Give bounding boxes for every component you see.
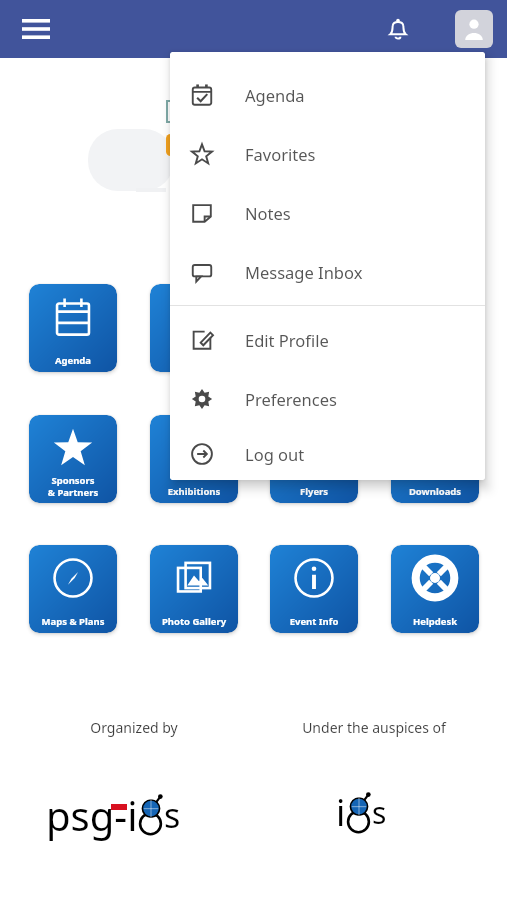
staticText: Sponsors & Partners [31, 474, 115, 498]
button[interactable]: Agenda [29, 284, 117, 372]
button[interactable]: Open navigation menu [16, 9, 56, 49]
button[interactable]: Photo Gallery [150, 545, 238, 633]
staticText: Event Info [272, 615, 356, 628]
staticText: Under the auspices of [240, 718, 507, 737]
button[interactable]: Helpdesk [391, 545, 479, 633]
button[interactable]: Speakers [150, 284, 238, 372]
staticText: Downloads [393, 485, 477, 498]
staticText: Notes [245, 202, 291, 224]
staticText: Message Inbox [245, 261, 363, 283]
staticText: Photo Gallery [152, 615, 236, 628]
staticText: Favorites [245, 143, 316, 165]
staticText: s [164, 792, 181, 838]
button[interactable]: Attendees [270, 284, 358, 372]
staticText: Maps & Plans [31, 615, 115, 628]
staticText: Preferences [245, 388, 337, 410]
staticText: Helpdesk [393, 615, 477, 628]
button[interactable]: Flyers [270, 415, 358, 503]
staticText: Log out [245, 443, 305, 465]
staticText: psg-i [46, 788, 138, 842]
button[interactable]: Downloads [391, 415, 479, 503]
button[interactable]: Notes [170, 183, 485, 242]
button[interactable]: Favorites [170, 124, 485, 183]
staticText: Edit Profile [245, 329, 329, 351]
button[interactable]: Sponsors & Partners [29, 415, 117, 503]
button[interactable]: Exhibitions [150, 415, 238, 503]
button[interactable]: Maps & Plans [29, 545, 117, 633]
button[interactable]: Profile [455, 10, 493, 48]
staticText: Flyers [272, 485, 356, 498]
staticText: Exhibitions [152, 485, 236, 498]
button[interactable]: Message Inbox [170, 242, 485, 301]
button[interactable]: Event Info [270, 545, 358, 633]
button[interactable]: Program [391, 284, 479, 372]
staticText: Speakers [152, 354, 236, 367]
staticText: i [336, 788, 346, 837]
button[interactable]: Edit Profile [170, 310, 485, 369]
staticText: Organized by [0, 718, 268, 737]
button[interactable]: Agenda [170, 65, 485, 124]
staticText: Agenda [31, 354, 115, 367]
button[interactable]: Log out [170, 428, 485, 480]
staticText: s [372, 792, 387, 833]
staticText: Agenda [245, 84, 305, 106]
button[interactable]: Notifications [377, 8, 419, 50]
button[interactable]: Preferences [170, 369, 485, 428]
